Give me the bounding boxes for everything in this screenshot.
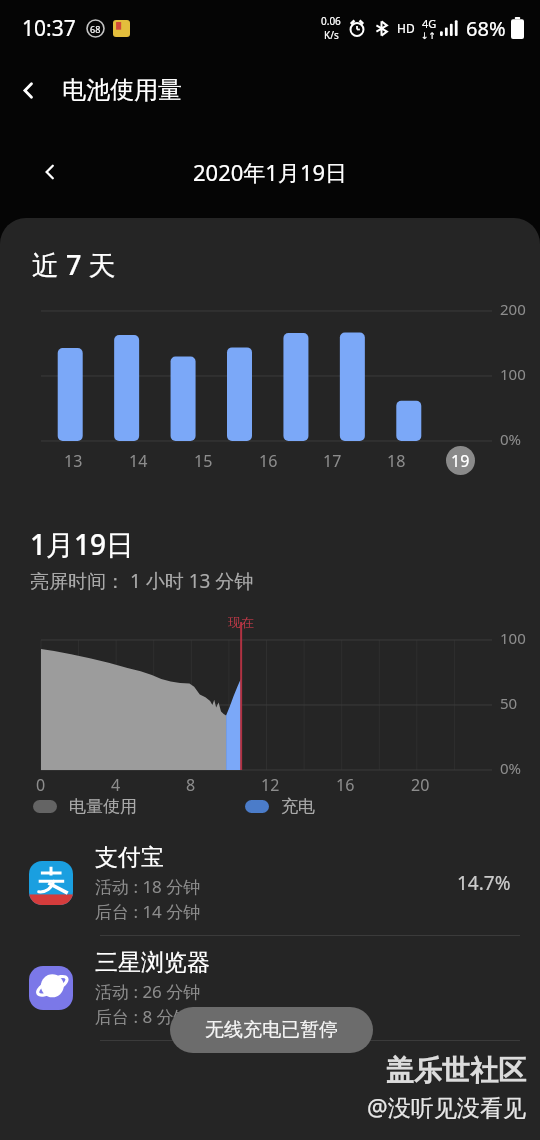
staticText: 支付宝 <box>95 843 164 872</box>
staticText: 0 <box>36 774 46 796</box>
staticText: K/s <box>324 28 339 42</box>
button[interactable]: Previous day <box>28 150 72 194</box>
staticText: 12 <box>261 774 280 796</box>
staticText: 盖乐世社区 <box>386 1053 526 1088</box>
staticText: 17 <box>323 450 342 472</box>
staticText: 无线充电已暂停 <box>205 1018 338 1042</box>
staticText: 0% <box>500 758 522 778</box>
staticText: 16 <box>336 774 355 796</box>
staticText: 200 <box>500 299 526 319</box>
staticText: 1月19日 <box>30 525 135 563</box>
staticText: 充电 <box>281 796 315 817</box>
staticText: HD <box>397 20 415 36</box>
staticText: 8 <box>186 774 196 796</box>
staticText: 100 <box>500 364 526 384</box>
staticText: 10:37 <box>22 14 76 43</box>
staticText: 13 <box>64 450 83 472</box>
staticText: 50 <box>500 693 518 713</box>
staticText: 100 <box>500 628 526 648</box>
staticText: 18 <box>387 450 406 472</box>
staticText: 现在 <box>228 614 254 630</box>
staticText: 16 <box>259 450 278 472</box>
staticText: 4G <box>422 16 437 31</box>
staticText: 近 7 天 <box>32 246 116 283</box>
staticText: @没听见没看见 <box>367 1091 526 1122</box>
staticText: 后台 : 8 分钟 <box>95 1005 191 1028</box>
staticText: 活动 : 26 分钟 <box>95 980 201 1003</box>
staticText: 后台 : 14 分钟 <box>95 900 201 923</box>
button[interactable]: 支付宝 <box>0 831 540 936</box>
staticText: 0.06 <box>321 14 341 28</box>
staticText: 68% <box>466 15 506 42</box>
staticText: 14 <box>129 450 148 472</box>
staticText: 电量使用 <box>69 796 137 817</box>
staticText: 电池使用量 <box>62 75 182 105</box>
staticText: 20 <box>411 774 430 796</box>
staticText: 4 <box>111 774 121 796</box>
staticText: 2020年1月19日 <box>193 157 348 187</box>
staticText: 15 <box>194 450 213 472</box>
staticText: ↓↑ <box>421 31 437 41</box>
staticText: 亮屏时间： 1 小时 13 分钟 <box>30 568 254 594</box>
staticText: 0% <box>500 429 522 449</box>
staticText: 19 <box>451 450 470 472</box>
staticText: 14.7% <box>457 870 511 896</box>
staticText: 68 <box>90 23 101 35</box>
button[interactable]: 三星浏览器 <box>0 936 540 1041</box>
staticText: 活动 : 18 分钟 <box>95 875 201 898</box>
staticText: 三星浏览器 <box>95 948 210 977</box>
button[interactable]: Back <box>0 62 56 118</box>
